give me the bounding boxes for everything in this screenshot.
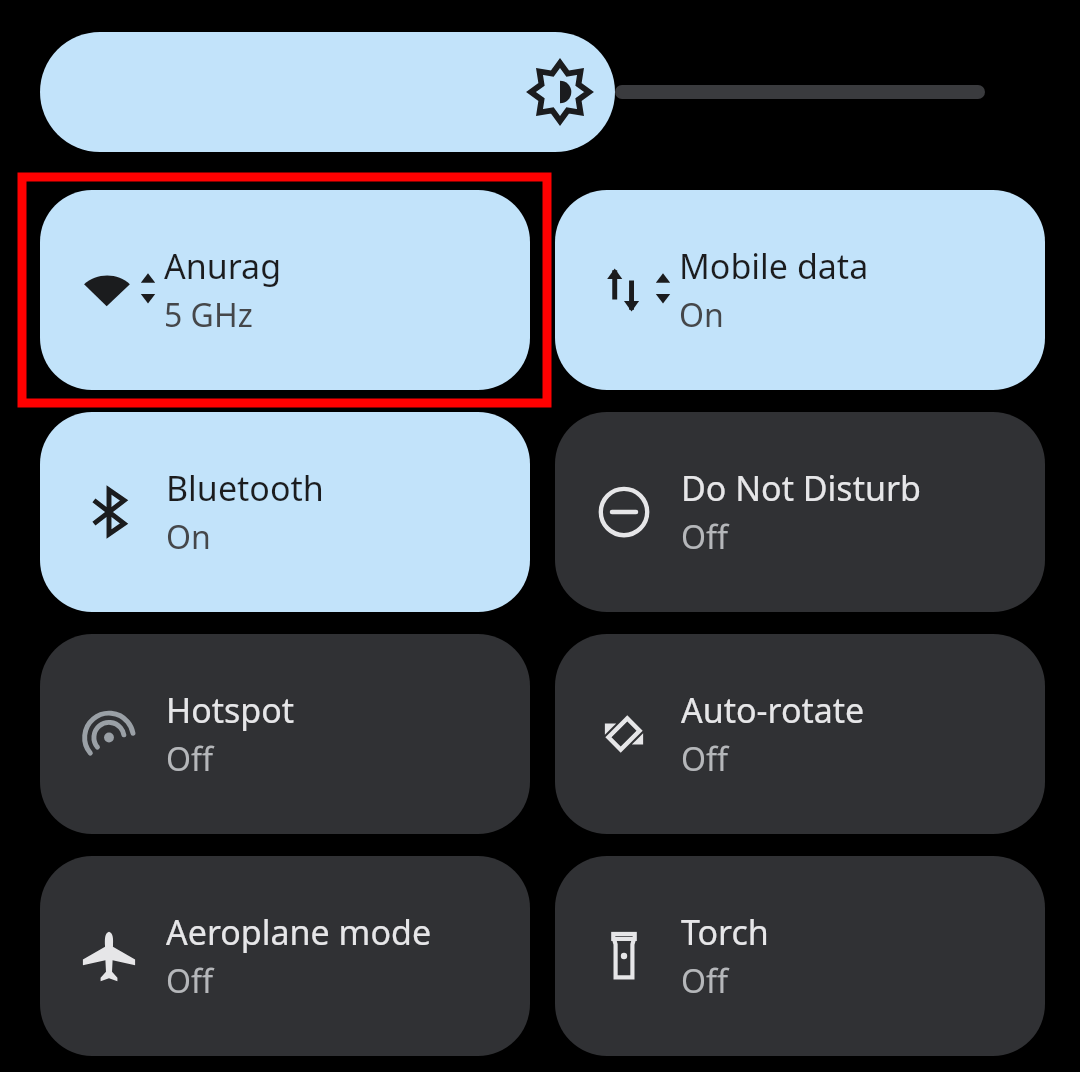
button[interactable]: Do Not Disturb (555, 412, 1045, 612)
button[interactable]: Torch (555, 856, 1045, 1056)
staticText: Bluetooth (166, 465, 324, 511)
staticText: 5 GHz (164, 293, 253, 337)
button[interactable]: Hotspot (40, 634, 530, 834)
staticText: Aeroplane mode (166, 909, 432, 955)
staticText: Off (681, 959, 729, 1003)
staticText: Auto-rotate (681, 687, 865, 733)
staticText: Mobile data (679, 243, 869, 289)
button[interactable]: Auto-rotate (555, 634, 1045, 834)
staticText: Torch (681, 909, 769, 955)
staticText: Off (166, 737, 214, 781)
button[interactable]: Mobile data (555, 190, 1045, 390)
button[interactable]: Brightness (40, 32, 615, 152)
button[interactable]: Aeroplane mode (40, 856, 530, 1056)
staticText: On (679, 293, 724, 337)
button[interactable]: Bluetooth (40, 412, 530, 612)
staticText: Hotspot (166, 687, 295, 733)
staticText: Do Not Disturb (681, 465, 921, 511)
staticText: Anurag (164, 243, 282, 289)
button[interactable]: Anurag (40, 190, 530, 390)
staticText: Off (681, 737, 729, 781)
staticText: Off (166, 959, 214, 1003)
staticText: On (166, 515, 211, 559)
staticText: Off (681, 515, 729, 559)
